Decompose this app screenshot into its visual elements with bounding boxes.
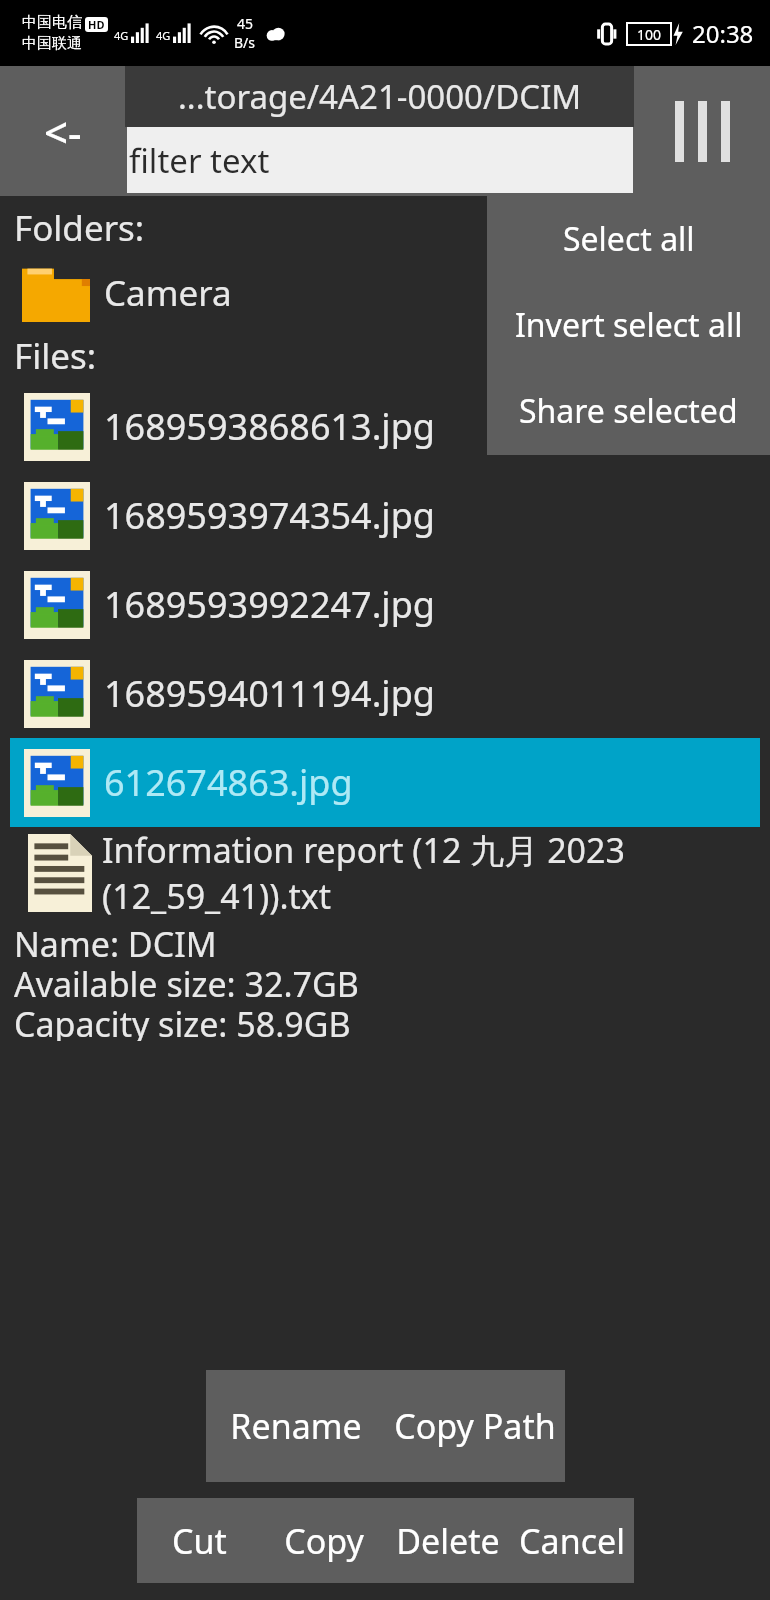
button[interactable]: Rename: [206, 1370, 385, 1482]
button[interactable]: 1689593992247.jpg: [0, 560, 770, 649]
button[interactable]: Delete: [386, 1498, 510, 1583]
staticText: Capacity size: 58.9GB: [14, 1001, 351, 1041]
staticText: 1689594011194.jpg: [104, 669, 435, 718]
button[interactable]: 1689593974354.jpg: [0, 471, 770, 560]
staticText: 20:38: [692, 17, 754, 50]
staticText: Select all: [563, 217, 695, 261]
staticText: Information report (12 九月 2023: [102, 827, 625, 873]
staticText: 1689593974354.jpg: [104, 491, 435, 540]
button[interactable]: 1689594011194.jpg: [0, 649, 770, 738]
staticText: HD: [88, 17, 105, 32]
staticText: Cut: [172, 1518, 227, 1564]
staticText: B/s: [234, 33, 256, 52]
staticText: Invert select all: [515, 303, 743, 347]
button[interactable]: 612674863.jpg: [10, 738, 760, 827]
staticText: Copy Path: [394, 1403, 556, 1449]
staticText: ...torage/4A21-0000/DCIM: [178, 74, 582, 119]
button[interactable]: ...torage/4A21-0000/DCIM: [125, 66, 634, 127]
button[interactable]: Cut: [137, 1498, 262, 1583]
button[interactable]: 1689593868613.jpg: [0, 382, 770, 471]
staticText: Share selected: [519, 389, 738, 433]
staticText: 4G: [114, 28, 129, 43]
staticText: Copy: [284, 1518, 364, 1564]
staticText: 中国电信: [22, 13, 82, 32]
staticText: 100: [637, 25, 662, 44]
staticText: Folders:: [14, 204, 145, 252]
button[interactable]: Cancel: [510, 1498, 634, 1583]
staticText: filter text: [129, 138, 270, 183]
button[interactable]: Copy Path: [385, 1370, 565, 1482]
staticText: Delete: [396, 1518, 500, 1564]
button[interactable]: Information report (12 九月 2023: [0, 827, 770, 919]
staticText: Name: DCIM: [14, 921, 217, 961]
button[interactable]: Camera: [0, 256, 770, 330]
staticText: Rename: [230, 1403, 362, 1449]
staticText: 1689593992247.jpg: [104, 580, 435, 629]
staticText: 4G: [156, 28, 171, 43]
staticText: (12_59_41)).txt: [102, 873, 332, 919]
staticText: 45: [237, 14, 254, 33]
staticText: 中国联通: [22, 34, 82, 53]
button[interactable]: Share selected: [487, 368, 770, 454]
button[interactable]: Invert select all: [487, 282, 770, 368]
button[interactable]: filter text: [127, 127, 633, 193]
button[interactable]: Menu: [634, 66, 770, 196]
staticText: Cancel: [519, 1518, 625, 1564]
staticText: Camera: [104, 269, 232, 317]
staticText: Available size: 32.7GB: [14, 961, 359, 1001]
staticText: <-: [44, 103, 82, 160]
staticText: 1689593868613.jpg: [104, 402, 435, 451]
button[interactable]: Back: [0, 66, 125, 196]
button[interactable]: Select all: [487, 196, 770, 282]
staticText: 612674863.jpg: [104, 758, 353, 807]
button[interactable]: Copy: [262, 1498, 386, 1583]
staticText: Files:: [14, 332, 97, 380]
